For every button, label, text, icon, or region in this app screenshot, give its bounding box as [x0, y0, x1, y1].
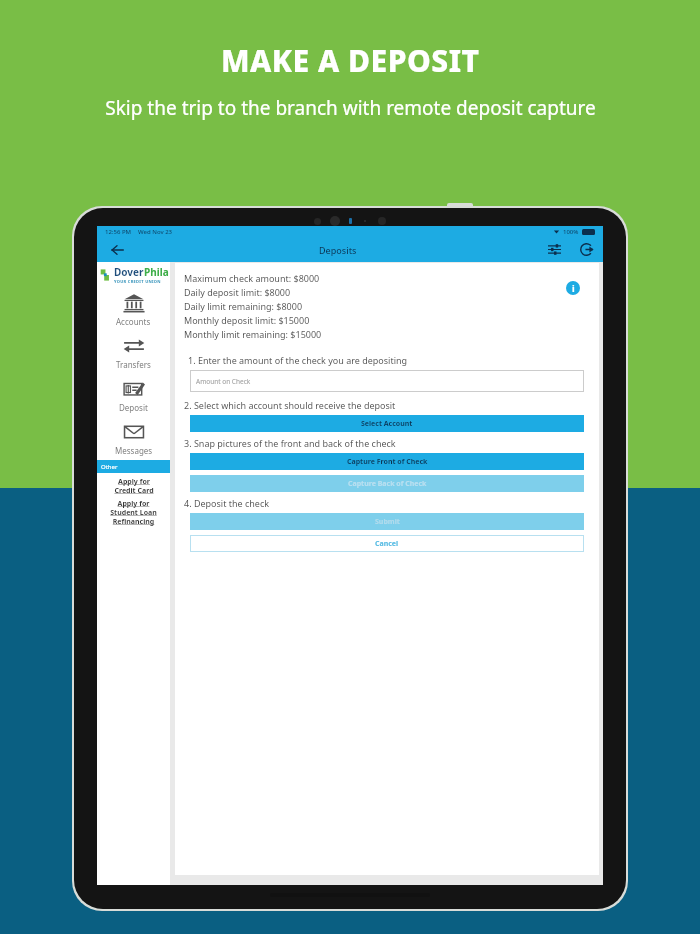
staticText: Messages — [115, 445, 153, 456]
button[interactable]: Submit — [190, 513, 584, 530]
button[interactable]: Deposit — [97, 374, 170, 417]
button[interactable]: Apply for Credit Card — [97, 477, 170, 495]
button[interactable]: Back — [97, 237, 137, 262]
staticText: Monthly limit remaining: $15000 — [184, 328, 322, 340]
staticText: 100% — [563, 228, 579, 236]
button[interactable]: Settings — [539, 237, 569, 262]
staticText: Deposit — [119, 402, 148, 413]
button[interactable]: Log out — [569, 237, 603, 262]
staticText: Wed Nov 23 — [138, 228, 173, 236]
staticText: Deposits — [319, 244, 357, 256]
button[interactable]: Apply for Student Loan Refinancing — [97, 499, 170, 526]
staticText: Phila — [144, 265, 169, 279]
button[interactable]: Accounts — [97, 288, 170, 331]
button[interactable]: Messages — [97, 417, 170, 460]
staticText: YOUR CREDIT UNION — [114, 279, 161, 284]
staticText: Submit — [375, 517, 400, 527]
button[interactable]: Amount on Check — [190, 370, 584, 392]
staticText: i — [572, 282, 575, 294]
staticText: Apply for Credit Card — [114, 477, 154, 495]
button[interactable]: Cancel — [190, 535, 584, 552]
staticText: Dover — [114, 265, 144, 279]
staticText: Capture Back of Check — [348, 479, 427, 489]
button[interactable]: Transfers — [97, 331, 170, 374]
staticText: 2. Select which account should receive t… — [184, 399, 396, 411]
staticText: Other — [101, 463, 118, 471]
button[interactable]: Capture Front of Check — [190, 453, 584, 470]
staticText: Transfers — [116, 359, 151, 370]
staticText: Accounts — [116, 316, 151, 327]
staticText: Apply for Student Loan Refinancing — [110, 499, 157, 526]
staticText: Daily limit remaining: $8000 — [184, 300, 303, 312]
staticText: 1. Enter the amount of the check you are… — [188, 354, 408, 366]
staticText: 3. Snap pictures of the front and back o… — [184, 437, 396, 449]
button[interactable]: Info — [566, 281, 580, 295]
staticText: 12:56 PM — [105, 228, 132, 236]
staticText: Daily deposit limit: $8000 — [184, 286, 291, 298]
button[interactable]: Select Account — [190, 415, 584, 432]
staticText: 4. Deposit the check — [184, 497, 270, 509]
staticText: Maximum check amount: $8000 — [184, 272, 320, 284]
staticText: Capture Front of Check — [347, 457, 428, 467]
staticText: Amount on Check — [196, 377, 251, 386]
staticText: MAKE A DEPOSIT — [221, 40, 480, 81]
staticText: Skip the trip to the branch with remote … — [105, 95, 596, 121]
button[interactable]: Capture Back of Check — [190, 475, 584, 492]
staticText: Cancel — [375, 539, 399, 549]
staticText: Monthly deposit limit: $15000 — [184, 314, 310, 326]
staticText: Select Account — [361, 419, 413, 429]
